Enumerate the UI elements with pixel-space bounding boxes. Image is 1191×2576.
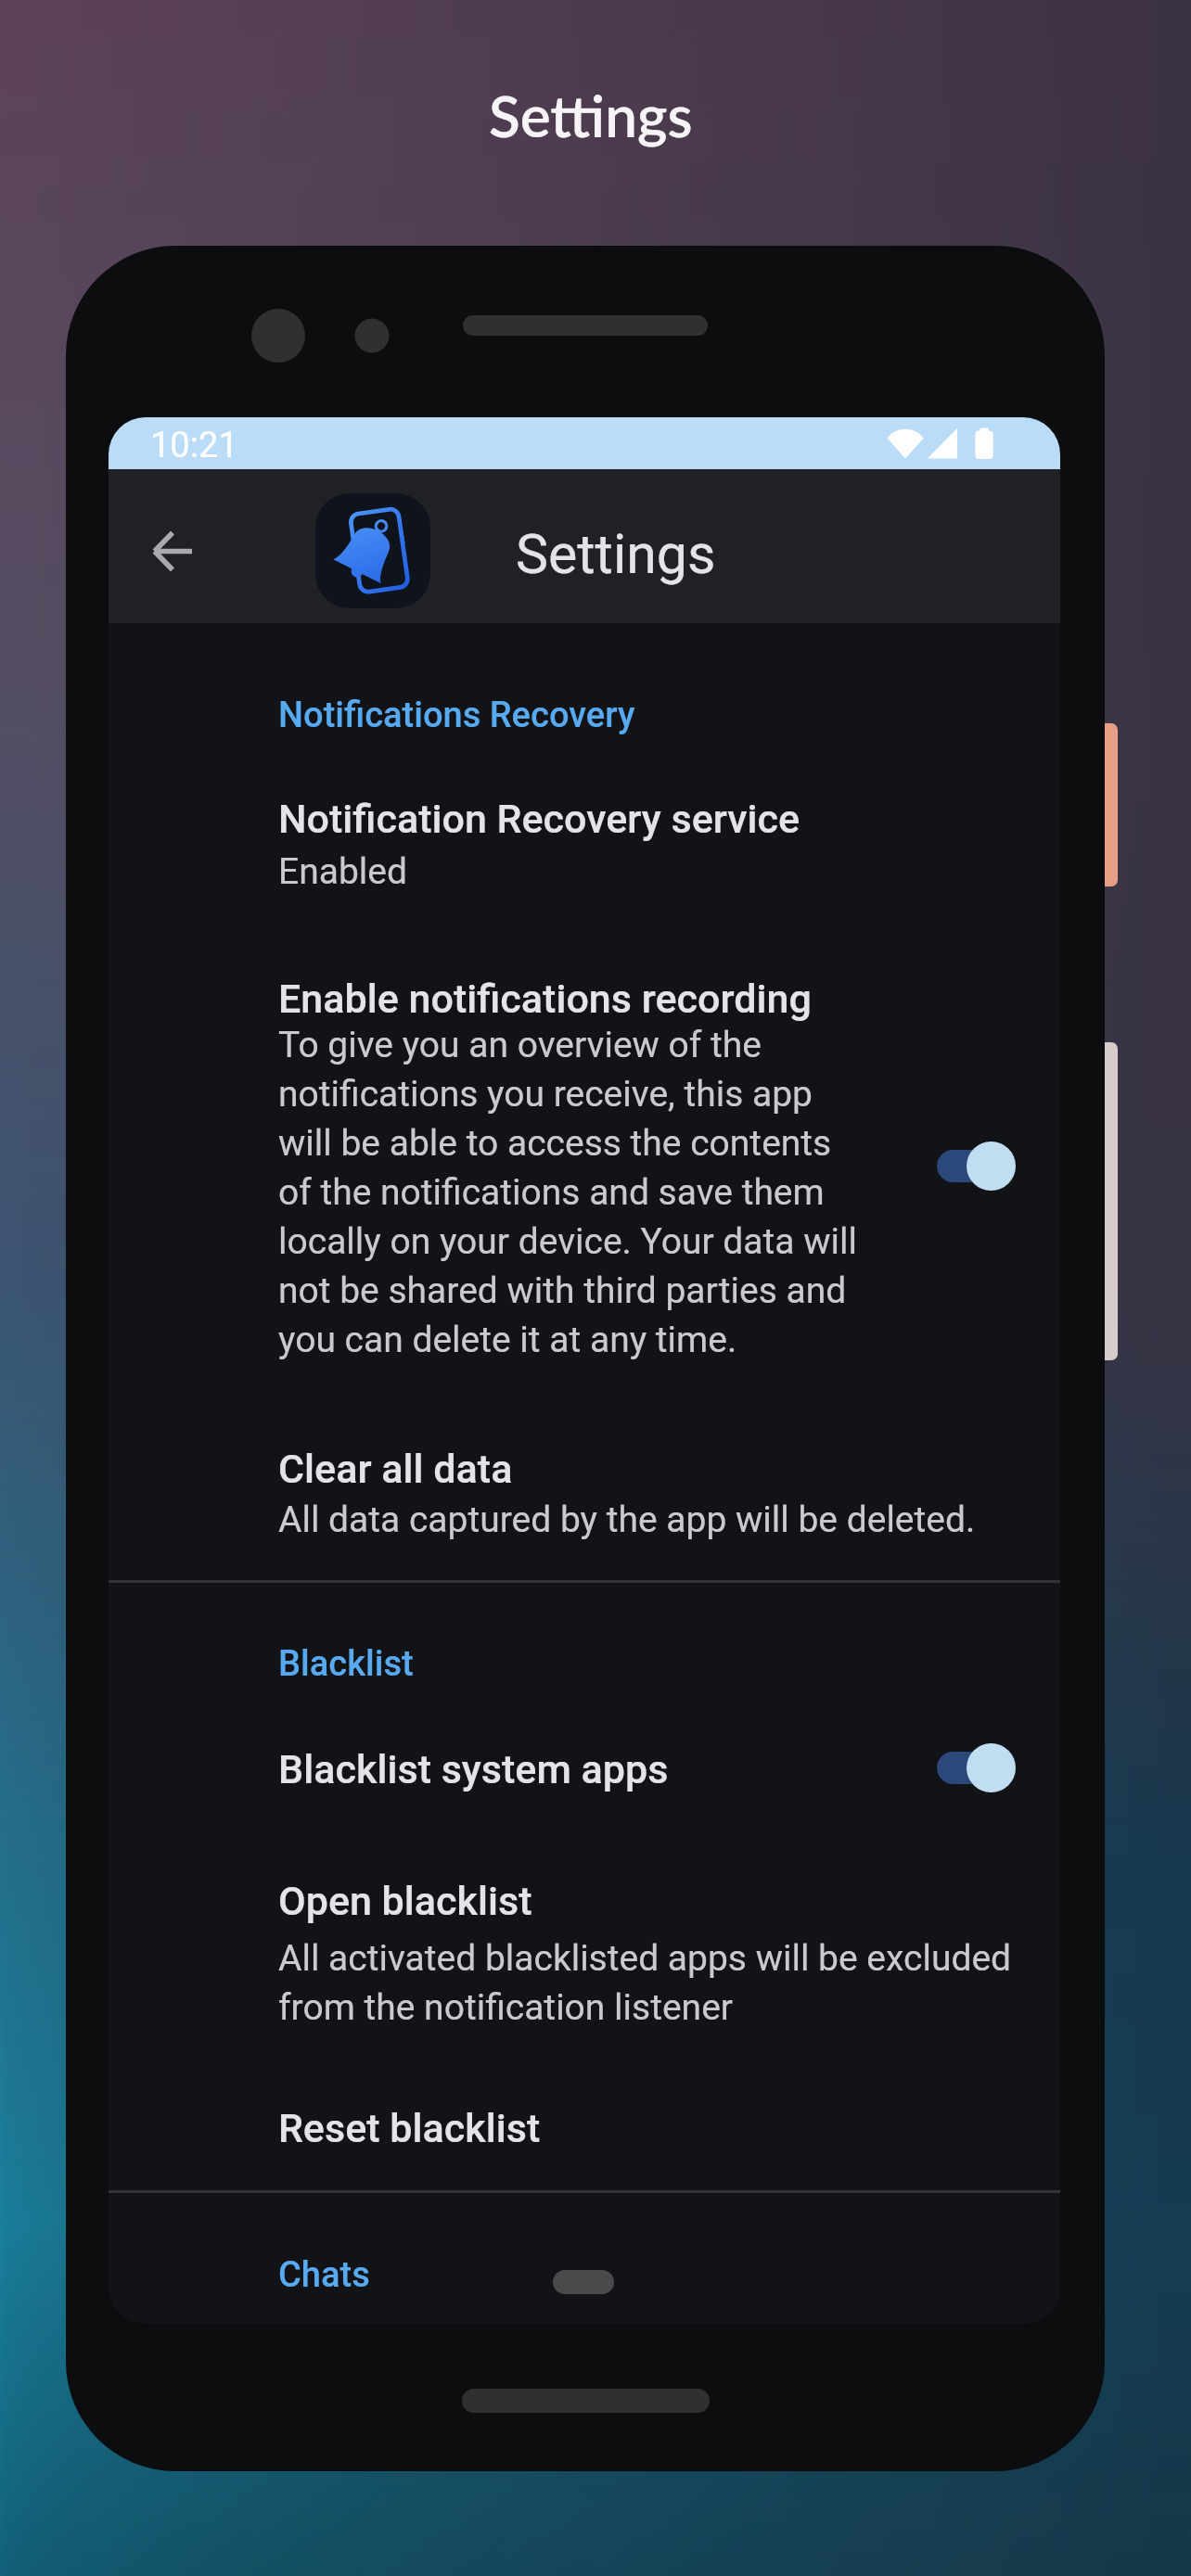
button[interactable]: Toggle — [906, 1130, 1027, 1203]
staticText: Settings — [489, 81, 693, 149]
button[interactable]: Notifications Recovery — [271, 682, 658, 749]
staticText: Open blacklist — [278, 1878, 532, 1924]
button[interactable]: Toggle — [906, 1732, 1027, 1804]
staticText: Enable notifications recording — [278, 976, 812, 1022]
staticText: All data captured by the app will be del… — [278, 1498, 976, 1541]
staticText: Blacklist — [278, 1643, 414, 1685]
staticText: Notification Recovery service — [278, 796, 800, 842]
staticText: Notifications Recovery — [278, 695, 635, 736]
staticText: All activated blacklisted apps will be e… — [278, 1937, 1020, 2028]
staticText: To give you an overview of the notificat… — [278, 1024, 861, 1360]
staticText: Clear all data — [278, 1446, 513, 1492]
button[interactable]: Chats — [271, 2241, 392, 2309]
button[interactable]: App icon — [315, 493, 430, 608]
staticText: Settings — [516, 522, 716, 586]
staticText: Chats — [278, 2254, 370, 2296]
staticText: Blacklist system apps — [278, 1746, 669, 1792]
button[interactable]: Blacklist — [271, 1630, 436, 1698]
staticText: 10:21 — [150, 425, 238, 466]
staticText: Reset blacklist — [278, 2105, 541, 2151]
button[interactable]: Back — [122, 500, 224, 602]
staticText: Enabled — [278, 850, 407, 893]
